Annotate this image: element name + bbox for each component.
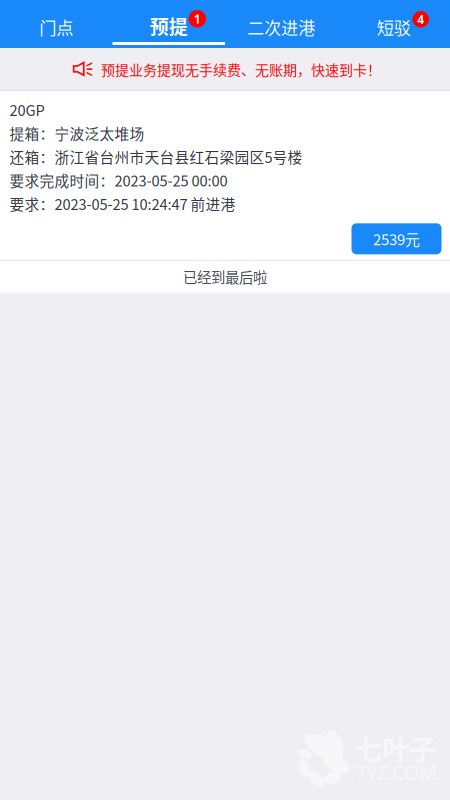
staticText: 4 — [417, 11, 424, 27]
staticText: 1 — [194, 11, 201, 27]
staticText: 预提 — [150, 12, 188, 39]
button[interactable]: 短驳 — [337, 0, 450, 48]
button[interactable]: 预提 — [112, 0, 225, 48]
staticText: 2539元 — [373, 228, 420, 250]
staticText: 提箱：宁波泛太堆场 — [9, 122, 144, 144]
button[interactable]: 二次进港 — [225, 0, 337, 48]
staticText: 七叶子 — [355, 728, 436, 768]
staticText: 要求：2023-05-25 10:24:47 前进港 — [9, 193, 235, 214]
staticText: 要求完成时间：2023-05-25 00:00 — [9, 169, 227, 191]
staticText: 已经到最后啦 — [183, 266, 267, 287]
staticText: 还箱：浙江省台州市天台县红石梁园区5号楼 — [9, 146, 302, 167]
staticText: 7YZ.COM — [355, 759, 437, 785]
staticText: 短驳 — [377, 14, 411, 39]
button[interactable]: 门点 — [0, 0, 112, 48]
staticText: 二次进港 — [247, 15, 315, 39]
staticText: 预提业务提现无手续费、无账期，快速到卡！ — [101, 59, 381, 79]
staticText: 20GP — [9, 99, 44, 120]
button[interactable]: 2539元 — [351, 223, 441, 254]
staticText: 门点 — [39, 14, 73, 39]
